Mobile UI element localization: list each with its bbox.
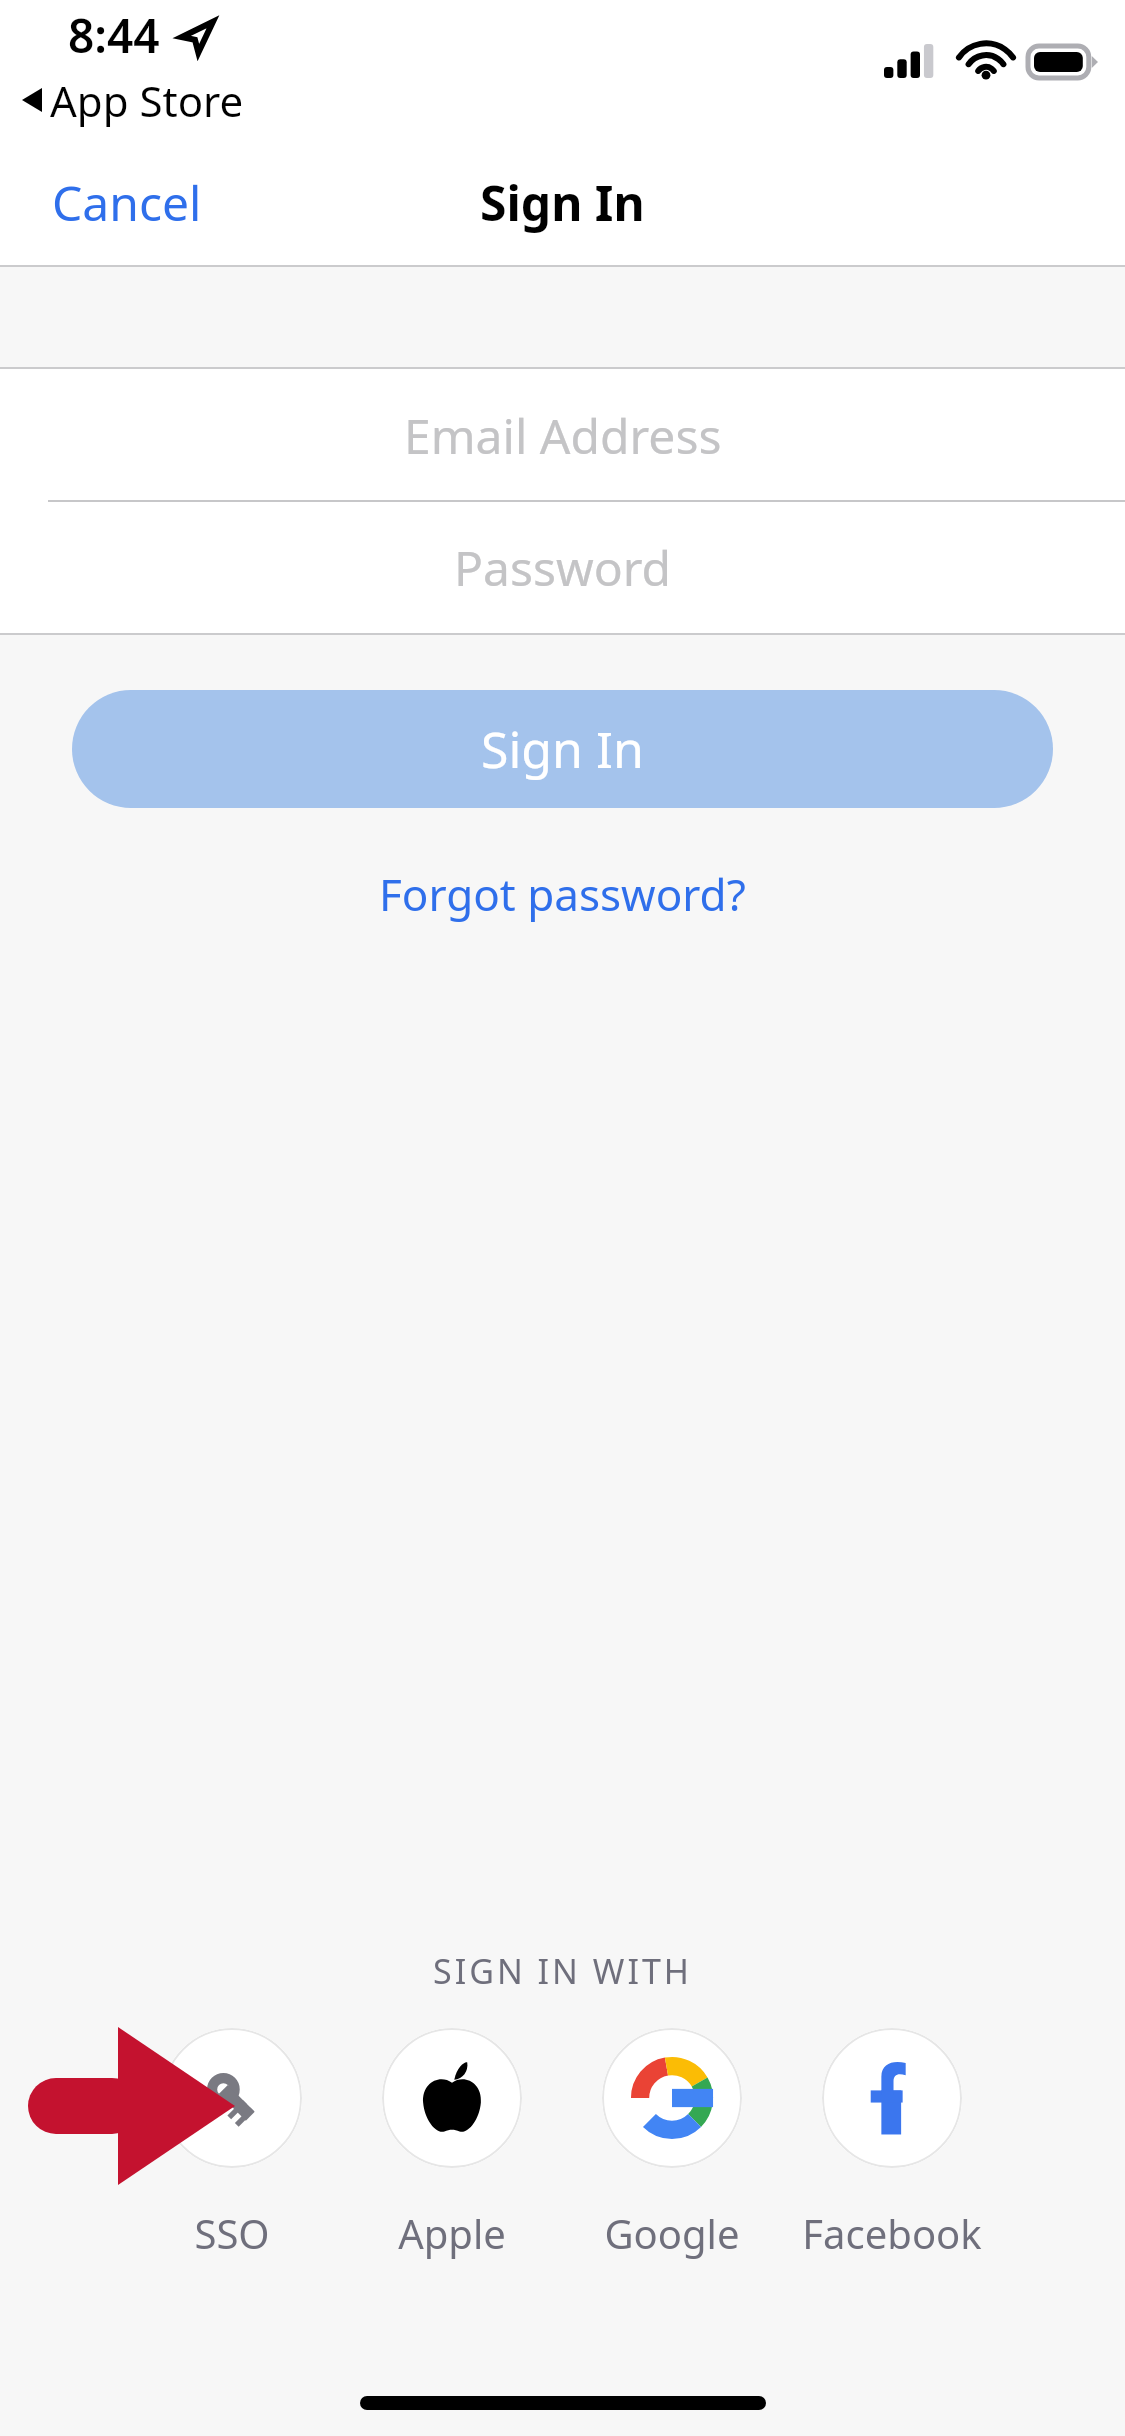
staticText: Email Address	[404, 403, 722, 468]
staticText: Apple	[357, 2206, 547, 2260]
button[interactable]: Sign In	[72, 690, 1053, 808]
button[interactable]: Forgot password?	[349, 856, 776, 932]
button[interactable]: Sign in with Facebook	[797, 2028, 987, 2168]
staticText: Sign In	[480, 170, 645, 235]
button[interactable]: Sign in with Apple	[357, 2028, 547, 2168]
button[interactable]: Sign in with SSO	[137, 2028, 327, 2168]
staticText: Facebook	[797, 2206, 987, 2260]
staticText: Google	[577, 2206, 767, 2260]
staticText: App Store	[50, 72, 244, 129]
staticText: SSO	[137, 2206, 327, 2260]
button[interactable]: Email Address	[0, 369, 1125, 501]
staticText: Password	[454, 535, 672, 600]
staticText: Forgot password?	[379, 864, 746, 924]
staticText: 8:44	[68, 4, 160, 67]
staticText: Sign In	[481, 715, 644, 783]
staticText: Cancel	[52, 170, 202, 235]
staticText: SIGN IN WITH	[0, 1948, 1125, 1994]
button[interactable]: Sign in with Google	[577, 2028, 767, 2168]
button[interactable]: Cancel	[0, 148, 254, 257]
button[interactable]: Password	[0, 501, 1125, 633]
